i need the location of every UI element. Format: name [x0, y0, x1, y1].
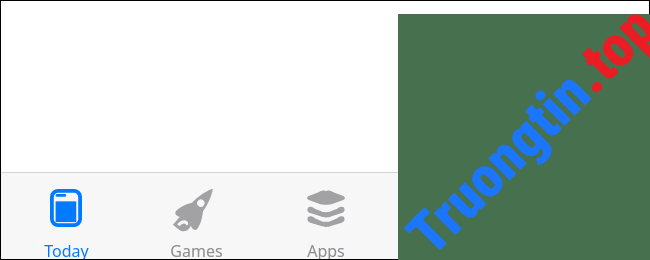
other: Today — [50, 189, 82, 227]
button[interactable]: Games — [131, 173, 261, 259]
other: Apps — [307, 190, 345, 226]
staticText: Apps — [307, 240, 345, 259]
other: Games — [172, 186, 220, 230]
staticText: Today — [44, 240, 89, 259]
button[interactable]: Apps — [261, 173, 391, 259]
staticText: Games — [170, 240, 223, 259]
button[interactable]: Today — [1, 173, 131, 259]
